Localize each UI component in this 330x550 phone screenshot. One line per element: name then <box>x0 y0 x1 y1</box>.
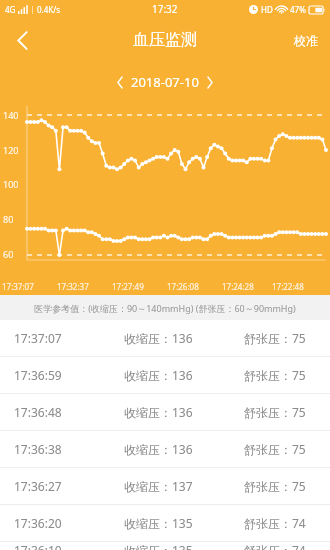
staticText: 17:36:27 <box>14 478 124 494</box>
button[interactable]: 17:36:38 <box>0 431 330 467</box>
staticText: 2018-07-10 <box>131 73 199 91</box>
staticText: 100 <box>3 178 19 190</box>
button[interactable]: 17:36:27 <box>0 468 330 504</box>
staticText: 收缩压：136 <box>124 441 244 457</box>
staticText: 舒张压：74 <box>244 515 306 531</box>
staticText: 17:27:49 <box>112 281 144 292</box>
button[interactable]: 2018-07-10 <box>117 73 213 91</box>
button[interactable]: 17:36:48 <box>0 394 330 430</box>
staticText: 80 <box>3 213 14 225</box>
staticText: 17:32 <box>152 2 178 16</box>
staticText: 17:36:38 <box>14 441 124 457</box>
staticText: 17:37:07 <box>2 281 34 292</box>
staticText: 0.4K/s <box>37 4 61 15</box>
button[interactable]: 校准 <box>282 18 330 62</box>
staticText: 舒张压：75 <box>244 367 306 383</box>
button[interactable]: 17:37:07 <box>0 320 330 356</box>
staticText: 舒张压：75 <box>244 404 306 420</box>
staticText: 17:22:48 <box>272 281 304 292</box>
staticText: 140 <box>3 109 19 121</box>
staticText: 47% <box>290 4 306 15</box>
button[interactable]: 17:36:20 <box>0 505 330 541</box>
staticText: 舒张压：74 <box>244 542 306 550</box>
staticText: 收缩压：135 <box>124 542 244 550</box>
staticText: 校准 <box>294 33 318 48</box>
staticText: 17:37:07 <box>14 330 124 346</box>
staticText: 17:26:08 <box>167 281 199 292</box>
staticText: 收缩压：136 <box>124 404 244 420</box>
staticText: 舒张压：75 <box>244 441 306 457</box>
staticText: 17:32:37 <box>57 281 89 292</box>
staticText: 17:36:10 <box>14 542 124 550</box>
staticText: HD <box>261 4 273 15</box>
staticText: 舒张压：75 <box>244 330 306 346</box>
staticText: 120 <box>3 144 19 156</box>
staticText: 舒张压：75 <box>244 478 306 494</box>
staticText: 17:36:20 <box>14 515 124 531</box>
button[interactable]: 17:36:59 <box>0 357 330 393</box>
staticText: 收缩压：135 <box>124 515 244 531</box>
staticText: 医学参考值：(收缩压：90～140mmHg) (舒张压：60～90mmHg) <box>34 302 296 314</box>
staticText: 17:36:48 <box>14 404 124 420</box>
button[interactable]: 17:36:10 <box>0 542 330 550</box>
staticText: 17:24:28 <box>222 281 254 292</box>
staticText: 60 <box>3 248 14 260</box>
staticText: 收缩压：137 <box>124 478 244 494</box>
staticText: 17:36:59 <box>14 367 124 383</box>
staticText: 血压监测 <box>133 30 197 50</box>
button[interactable]: Back <box>0 18 44 62</box>
staticText: 收缩压：136 <box>124 330 244 346</box>
staticText: 收缩压：136 <box>124 367 244 383</box>
staticText: 4G <box>5 4 16 15</box>
